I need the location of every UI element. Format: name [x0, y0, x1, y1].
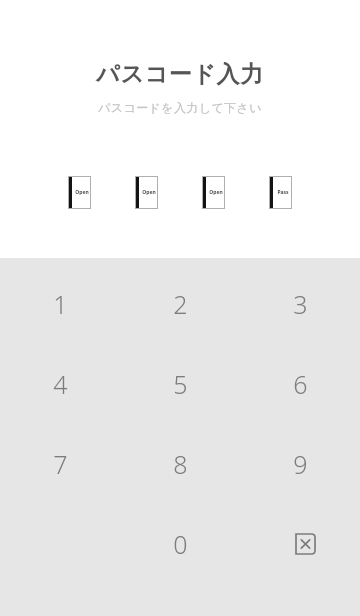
- button[interactable]: Open: [202, 176, 225, 209]
- staticText: 0: [173, 527, 188, 561]
- button[interactable]: Open: [68, 176, 91, 209]
- button[interactable]: 3: [240, 264, 360, 344]
- button[interactable]: 6: [240, 344, 360, 424]
- staticText: Open: [142, 189, 156, 196]
- staticText: 3: [293, 287, 308, 321]
- staticText: 1: [53, 287, 68, 321]
- staticText: 4: [53, 367, 68, 401]
- button[interactable]: 7: [0, 424, 120, 504]
- staticText: 5: [173, 367, 188, 401]
- staticText: Open: [209, 189, 223, 196]
- button[interactable]: Delete: [240, 504, 360, 584]
- staticText: Pass: [277, 189, 289, 196]
- staticText: Open: [75, 189, 89, 196]
- button[interactable]: 5: [120, 344, 240, 424]
- button[interactable]: 4: [0, 344, 120, 424]
- staticText: 8: [173, 447, 188, 481]
- button[interactable]: 1: [0, 264, 120, 344]
- staticText: 9: [293, 447, 308, 481]
- button[interactable]: 8: [120, 424, 240, 504]
- staticText: 6: [293, 367, 308, 401]
- staticText: 7: [53, 447, 68, 481]
- staticText: 2: [173, 287, 188, 321]
- button[interactable]: Pass: [269, 176, 292, 209]
- button[interactable]: 0: [120, 504, 240, 584]
- button[interactable]: Open: [135, 176, 158, 209]
- staticText: パスコード入力: [96, 60, 264, 89]
- staticText: パスコードを入力して下さい: [98, 100, 262, 115]
- button[interactable]: 9: [240, 424, 360, 504]
- button[interactable]: 2: [120, 264, 240, 344]
